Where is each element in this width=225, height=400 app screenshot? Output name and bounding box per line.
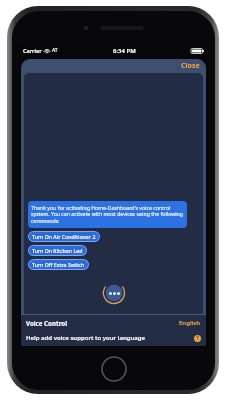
staticText: Help add voice support to your language (26, 334, 146, 342)
staticText: AT (52, 47, 58, 54)
button[interactable]: Help add voice support to your language (21, 330, 206, 346)
button[interactable]: Turn Off Extra Switch (28, 259, 89, 270)
button[interactable]: Turn On Kitchen Led (28, 245, 87, 256)
staticText: Turn On Kitchen Led (32, 247, 83, 254)
staticText: Voice Control (26, 319, 68, 327)
button[interactable]: Thank you for activating Home-Dashboard'… (28, 201, 187, 228)
staticText: ? (196, 335, 199, 342)
staticText: Carrier (23, 47, 42, 54)
staticText: Turn On Air Conditioner 2 (32, 233, 96, 240)
staticText: 6:34 PM (113, 47, 136, 55)
button[interactable]: Turn On Air Conditioner 2 (28, 231, 100, 242)
staticText: Thank you for activating Home-Dashboard'… (31, 204, 184, 225)
button[interactable]: Voice Control (21, 315, 206, 330)
button[interactable]: Close (179, 60, 202, 72)
staticText: Close (181, 61, 200, 71)
button[interactable]: Voice input (103, 282, 125, 304)
staticText: Turn Off Extra Switch (32, 261, 85, 268)
staticText: English (179, 319, 201, 327)
